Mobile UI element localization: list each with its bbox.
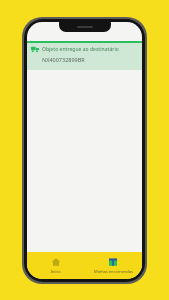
staticText: Objeto entregue ao destinatário (42, 46, 119, 53)
button[interactable]: Minhas encomendas (84, 252, 142, 279)
button[interactable]: Início (27, 252, 84, 279)
staticText: NX400732899BR (42, 56, 85, 63)
button[interactable]: Objeto entregue ao destinatário (27, 41, 142, 70)
staticText: Minhas encomendas (94, 269, 133, 274)
staticText: Início (50, 269, 61, 274)
